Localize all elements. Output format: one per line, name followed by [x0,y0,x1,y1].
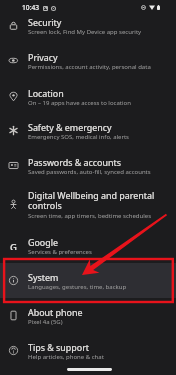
button[interactable]: Passwords & accounts [0,148,176,183]
staticText: Security [28,16,62,28]
staticText: Screen lock, Find My Device app security [28,28,142,36]
button[interactable]: Safety & emergency [0,113,176,148]
staticText: Services & preferences [28,248,92,256]
staticText: Pixel 4a (5G) [28,318,63,326]
staticText: Tips & support [28,341,90,353]
staticText: Help articles, phone & chat [28,353,104,361]
staticText: Languages, gestures, time, backup [28,283,127,291]
staticText: Digital Wellbeing and parental controls [28,189,168,212]
staticText: Saved passwords, auto-fill, synced accou… [28,168,151,176]
button[interactable]: System [0,263,176,298]
staticText: About phone [28,306,83,318]
staticText: Safety & emergency [28,121,112,133]
button[interactable]: Tips & support [0,333,176,368]
staticText: System [28,271,59,283]
staticText: Emergency SOS, medical info, alerts [28,133,129,141]
staticText: On – 19 apps have access to location [28,99,131,107]
staticText: Passwords & accounts [28,156,121,168]
button[interactable]: Privacy [0,43,176,78]
staticText: Screen time, app timers, bedtime schedul… [28,212,152,220]
staticText: Permissions, account activity, personal … [28,63,151,71]
button[interactable]: Security [0,8,176,43]
button[interactable]: G [0,228,176,263]
staticText: G [10,241,17,250]
button[interactable]: Digital Wellbeing and parental controls [0,182,176,227]
staticText: Google [28,236,59,248]
staticText: 10:43 [22,3,40,12]
staticText: Location [28,87,64,99]
button[interactable]: About phone [0,298,176,333]
staticText: Privacy [28,51,58,63]
button[interactable]: Location [0,79,176,114]
